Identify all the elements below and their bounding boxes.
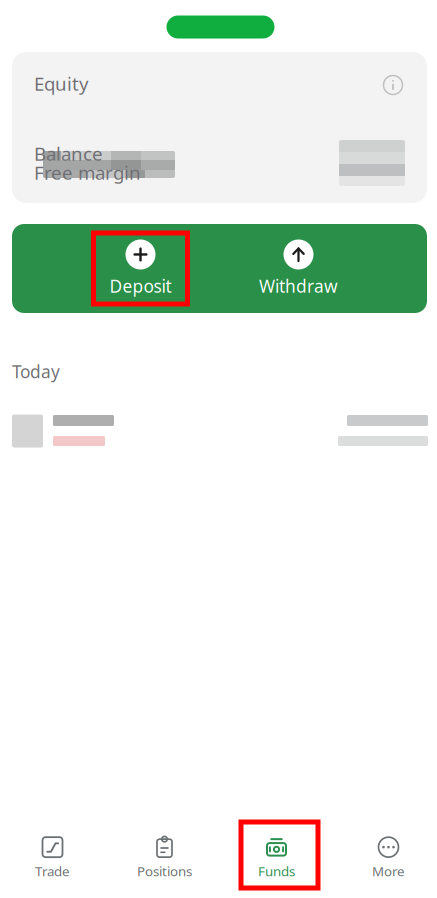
staticText: Equity: [34, 71, 89, 96]
button[interactable]: Positions: [108, 835, 220, 881]
staticText: Withdraw: [259, 274, 338, 297]
staticText: Balance: [34, 141, 103, 166]
staticText: Deposit: [109, 274, 171, 297]
staticText: Funds: [258, 862, 295, 880]
button[interactable]: More: [332, 835, 437, 881]
staticText: Trade: [35, 862, 70, 880]
staticText: More: [372, 862, 405, 880]
staticText: Positions: [137, 862, 192, 880]
button[interactable]: Trade: [0, 835, 108, 881]
button[interactable]: Funds: [220, 835, 332, 881]
staticText: Free margin: [34, 160, 141, 185]
staticText: Today: [12, 360, 60, 383]
button[interactable]: Withdraw: [249, 230, 348, 306]
button[interactable]: Deposit: [91, 230, 190, 306]
